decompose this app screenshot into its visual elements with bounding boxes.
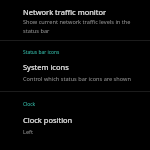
button[interactable]: Network traffic monitor <box>0 1 150 40</box>
staticText: Left <box>23 128 34 136</box>
button[interactable]: Clock position <box>0 110 150 140</box>
staticText: status bar <box>23 27 50 35</box>
button[interactable]: System icons <box>0 58 150 91</box>
staticText: Network traffic monitor <box>23 7 107 17</box>
staticText: Clock position <box>23 115 73 125</box>
staticText: Status bar icons <box>23 49 60 56</box>
staticText: Control which status bar icons are shown <box>23 75 131 83</box>
staticText: Show current network traffic levels in t… <box>23 18 131 26</box>
staticText: Clock <box>23 101 36 108</box>
staticText: System icons <box>23 62 69 72</box>
